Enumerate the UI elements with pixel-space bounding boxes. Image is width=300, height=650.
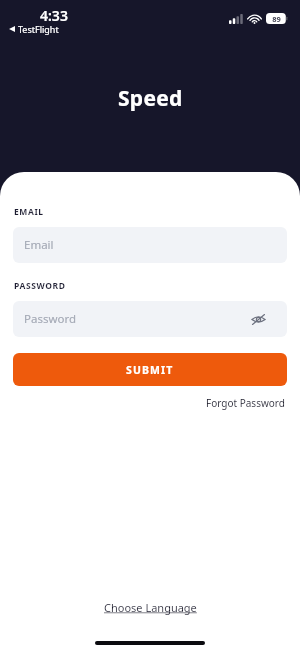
button[interactable]: Forgot Password bbox=[204, 394, 287, 412]
button[interactable]: Choose Language bbox=[98, 596, 203, 619]
staticText: 4:33 bbox=[40, 6, 68, 25]
button[interactable]: Email bbox=[13, 227, 287, 263]
staticText: TestFlight bbox=[18, 23, 59, 35]
button[interactable]: SUBMIT bbox=[13, 353, 287, 386]
staticText: SUBMIT bbox=[126, 363, 174, 377]
staticText: Email bbox=[24, 237, 54, 253]
staticText: 89 bbox=[272, 14, 281, 24]
staticText: Forgot Password bbox=[206, 396, 285, 410]
button[interactable]: Show password bbox=[249, 310, 267, 328]
staticText: Password bbox=[24, 311, 77, 327]
staticText: Speed bbox=[118, 84, 183, 113]
staticText: Choose Language bbox=[104, 600, 197, 615]
staticText: EMAIL bbox=[14, 206, 44, 218]
staticText: PASSWORD bbox=[14, 280, 66, 292]
button[interactable]: Password bbox=[13, 301, 287, 337]
